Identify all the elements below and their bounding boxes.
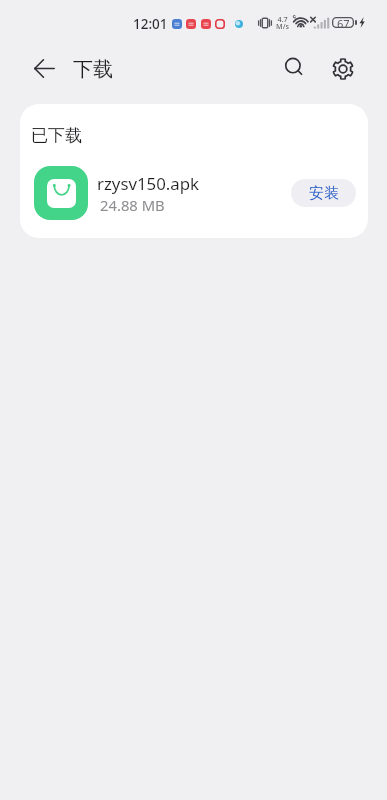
staticText: 下载 — [73, 57, 113, 82]
staticText: rzysv150.apk — [97, 172, 200, 195]
button[interactable]: Search — [277, 50, 314, 87]
staticText: M/s — [276, 21, 289, 31]
staticText: 24.88 MB — [100, 195, 165, 215]
button[interactable]: Settings — [324, 50, 361, 87]
button[interactable]: 安装 — [291, 179, 356, 207]
staticText: 安装 — [309, 184, 339, 203]
staticText: 4.7 — [277, 14, 288, 24]
staticText: 12:01 — [133, 15, 168, 33]
staticText: 已下载 — [31, 125, 82, 146]
button[interactable]: rzysv150.apk — [20, 158, 368, 230]
button[interactable]: Back — [26, 50, 63, 87]
staticText: 67 — [337, 16, 350, 27]
